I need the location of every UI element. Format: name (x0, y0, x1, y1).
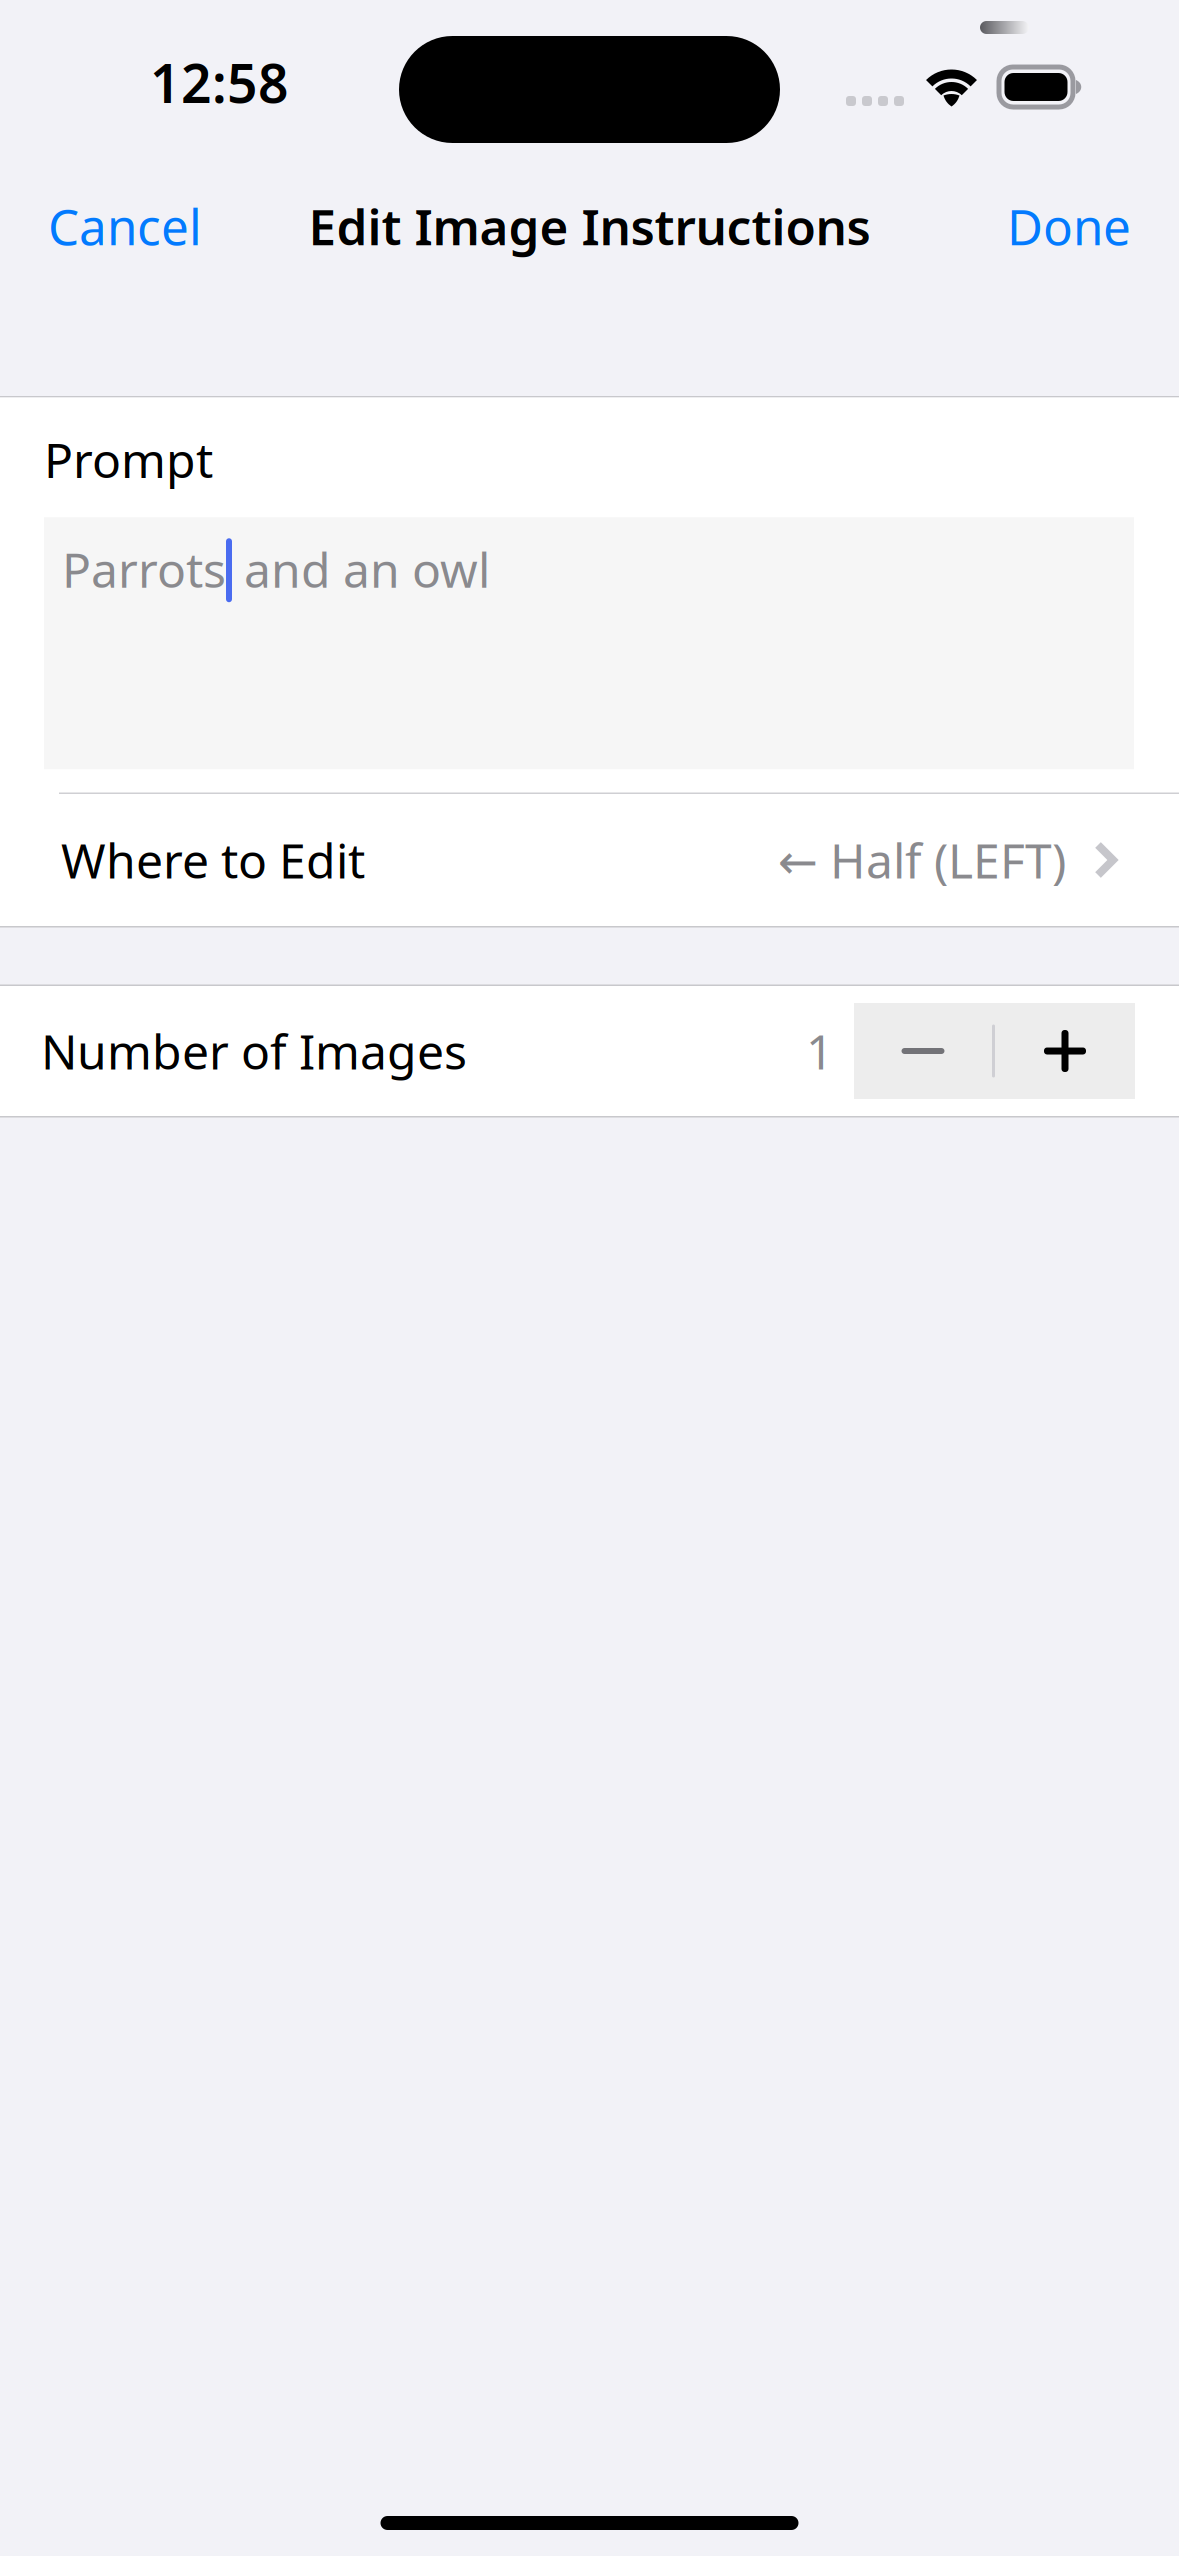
button[interactable]: Cancel (0, 170, 232, 282)
staticText: ← Half (LEFT) (778, 828, 1066, 892)
staticText: 1 (806, 1019, 833, 1083)
staticText: Cancel (48, 193, 202, 259)
staticText: Done (1007, 193, 1131, 259)
staticText: Number of Images (41, 1019, 467, 1083)
staticText: Edit Image Instructions (308, 193, 870, 259)
staticText: Parrots (62, 537, 226, 601)
staticText: 12:58 (150, 47, 289, 118)
button[interactable]: Parrots (0, 491, 1179, 769)
staticText: Prompt (44, 427, 213, 491)
button[interactable]: Where to Edit (0, 794, 1179, 926)
button[interactable]: Increment (995, 1003, 1135, 1099)
staticText: and an owl (232, 537, 490, 601)
staticText: Where to Edit (61, 828, 365, 892)
button[interactable]: Done (977, 170, 1179, 282)
button[interactable]: Decrement (854, 1003, 992, 1099)
